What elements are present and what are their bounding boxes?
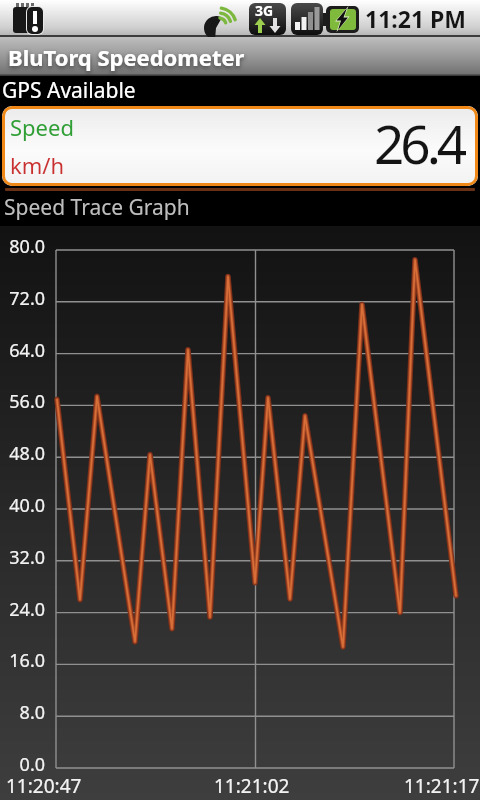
staticText: 72.0 (0, 286, 45, 311)
staticText: 8.0 (0, 700, 45, 725)
button[interactable]: Speed (2, 106, 478, 186)
staticText: Speed (10, 112, 74, 142)
button[interactable]: GPS Available (0, 76, 480, 104)
staticText: 11:20:47 (6, 773, 82, 799)
staticText: 11:21:17 (404, 773, 480, 799)
staticText: 40.0 (0, 493, 45, 518)
staticText: 48.0 (0, 441, 45, 466)
staticText: BluTorq Speedometer (8, 42, 245, 72)
staticText: 11:21:02 (214, 773, 290, 799)
staticText: 56.0 (0, 389, 45, 414)
staticText: km/h (10, 150, 65, 180)
button[interactable]: 80.0 (0, 226, 480, 800)
staticText: 24.0 (0, 597, 45, 622)
button[interactable]: BluTorq Speedometer (0, 37, 480, 76)
staticText: 11:21 PM (365, 3, 467, 34)
button[interactable]: 3G (0, 0, 480, 37)
staticText: 16.0 (0, 648, 45, 673)
staticText: 80.0 (0, 234, 45, 259)
staticText: Speed Trace Graph (4, 193, 190, 222)
staticText: 26.4 (374, 107, 464, 179)
staticText: 3G (255, 1, 274, 20)
staticText: GPS Available (2, 76, 136, 104)
staticText: 64.0 (0, 338, 45, 363)
staticText: 32.0 (0, 545, 45, 570)
staticText: 0.0 (0, 752, 45, 777)
